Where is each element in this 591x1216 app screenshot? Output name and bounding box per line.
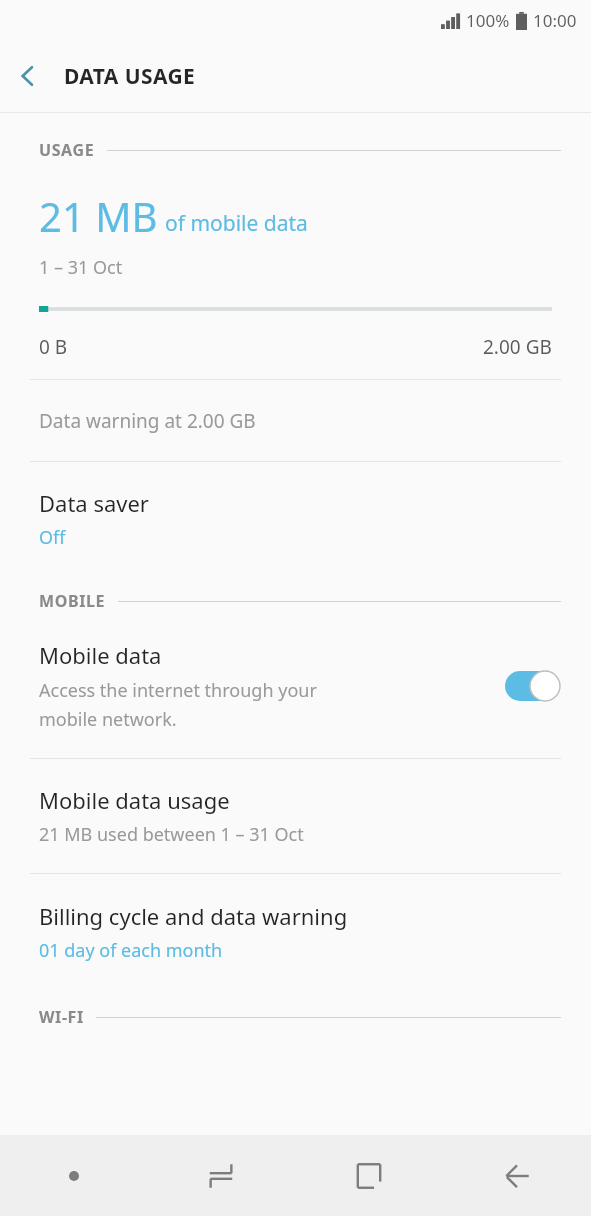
button[interactable]: Back — [0, 48, 56, 104]
button[interactable]: Menu — [0, 1135, 147, 1216]
staticText: of mobile data — [165, 209, 308, 238]
button[interactable]: Home — [295, 1135, 443, 1216]
staticText: 0 B — [39, 334, 68, 360]
staticText: MOBILE — [39, 590, 106, 612]
staticText: Data saver — [39, 488, 149, 518]
staticText: USAGE — [39, 139, 95, 161]
staticText: WI-FI — [39, 1006, 84, 1028]
staticText: DATA USAGE — [64, 62, 196, 91]
button[interactable]: Billing cycle and data warning — [0, 874, 591, 990]
staticText: 10:00 — [533, 9, 577, 32]
button[interactable]: Mobile data — [0, 612, 591, 758]
staticText: 2.00 GB — [483, 334, 552, 360]
staticText: Access the internet through your — [39, 678, 317, 703]
button[interactable]: Back — [443, 1135, 591, 1216]
button[interactable]: Data saver — [0, 462, 591, 576]
staticText: 1 – 31 Oct — [39, 255, 123, 280]
staticText: Data warning at 2.00 GB — [39, 408, 256, 434]
staticText: 01 day of each month — [39, 938, 223, 963]
staticText: Mobile data — [39, 640, 162, 670]
button[interactable]: Recents — [147, 1135, 295, 1216]
button[interactable]: Mobile data usage — [0, 759, 591, 873]
staticText: Billing cycle and data warning — [39, 901, 348, 931]
staticText: mobile network. — [39, 707, 177, 732]
staticText: Mobile data usage — [39, 785, 230, 815]
staticText: 21 MB used between 1 – 31 Oct — [39, 822, 304, 847]
button[interactable]: Mobile data toggle — [505, 670, 561, 702]
staticText: 21 MB — [39, 189, 158, 243]
staticText: 100% — [466, 9, 510, 32]
staticText: Off — [39, 525, 66, 550]
